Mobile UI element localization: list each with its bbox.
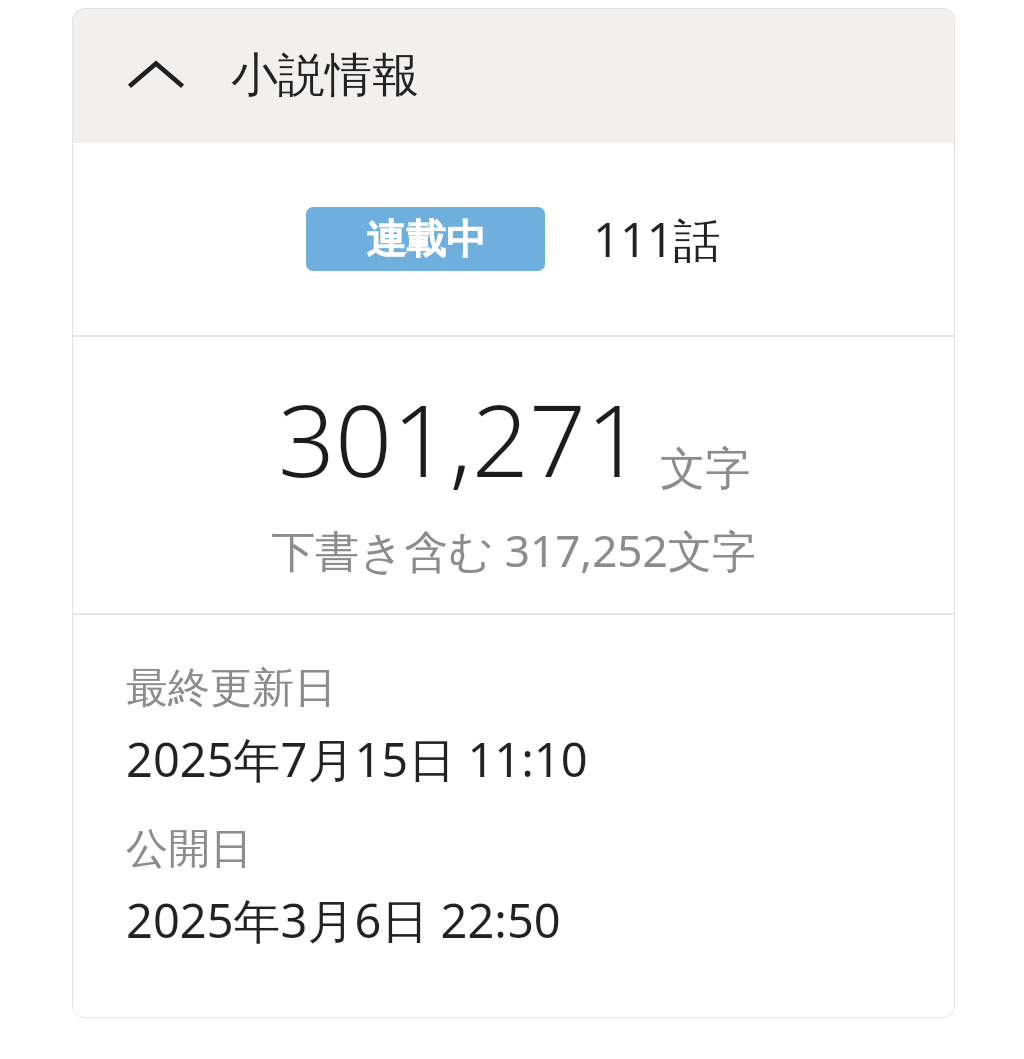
staticText: 下書き含む 317,252文字 bbox=[271, 520, 756, 580]
staticText: 111話 bbox=[593, 207, 721, 271]
button[interactable]: 連載中 bbox=[72, 143, 955, 335]
staticText: 小説情報 bbox=[231, 46, 419, 105]
button[interactable]: 折りたたむ bbox=[72, 8, 955, 143]
staticText: 2025年7月15日 11:10 bbox=[126, 727, 588, 791]
staticText: 301,271 bbox=[278, 370, 644, 506]
staticText: 2025年3月6日 22:50 bbox=[126, 888, 561, 952]
staticText: 公開日 bbox=[126, 823, 252, 876]
button[interactable]: 301,271 bbox=[72, 337, 955, 613]
other: 折りたたむ bbox=[125, 45, 187, 107]
staticText: 文字 bbox=[660, 441, 750, 498]
button[interactable]: 最終更新日 bbox=[126, 662, 955, 952]
staticText: 連載中 bbox=[366, 214, 486, 264]
staticText: 最終更新日 bbox=[126, 662, 336, 715]
